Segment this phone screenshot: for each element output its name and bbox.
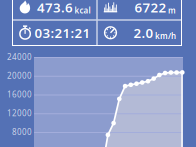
staticText: 12000 [7,108,32,118]
staticText: 20000 [7,70,32,81]
staticText: m [168,5,176,16]
staticText: 2.0 [133,24,153,42]
staticText: 6722 [134,0,166,16]
button[interactable]: Speed [97,20,182,45]
button[interactable]: Duration [12,20,96,45]
staticText: km/h [155,30,176,41]
staticText: 473.6 [37,0,73,16]
button[interactable]: Calories [12,0,96,19]
staticText: kcal [74,5,90,16]
staticText: 8000 [12,127,32,137]
staticText: 16000 [7,89,32,100]
staticText: 03:21:21 [34,24,90,42]
button[interactable]: Elevation [97,0,182,19]
staticText: 24000 [7,52,32,62]
